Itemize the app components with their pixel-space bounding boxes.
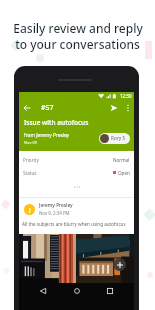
staticText: 12:30 bbox=[120, 93, 132, 99]
button[interactable]: Rory S bbox=[99, 133, 130, 144]
staticText: Priority bbox=[23, 157, 39, 163]
button[interactable]: Send bbox=[106, 100, 121, 115]
staticText: Issue with autofocus bbox=[24, 118, 89, 127]
staticText: Open bbox=[118, 170, 130, 176]
staticText: Rory S bbox=[111, 135, 126, 142]
staticText: Normal bbox=[113, 157, 130, 163]
button[interactable]: Home bbox=[68, 283, 86, 299]
button[interactable]: Status bbox=[19, 169, 134, 176]
staticText: J bbox=[29, 206, 31, 214]
button[interactable]: Add attachment bbox=[113, 258, 126, 271]
button[interactable]: Back bbox=[34, 283, 52, 299]
button[interactable]: Recent apps bbox=[101, 283, 119, 299]
button[interactable]: More options bbox=[121, 101, 134, 114]
staticText: Jeremy Presley bbox=[39, 202, 73, 209]
button[interactable]: Back bbox=[19, 100, 34, 115]
staticText: to your conversations bbox=[15, 36, 140, 52]
button[interactable]: Priority bbox=[19, 156, 134, 163]
staticText: from Jeremy Presley bbox=[24, 132, 70, 139]
staticText: Nov 09 bbox=[24, 140, 38, 145]
staticText: Nov 9, 2:34 PM bbox=[39, 210, 70, 216]
staticText: #57 bbox=[41, 103, 54, 113]
staticText: Status bbox=[23, 170, 37, 176]
staticText: Easily review and reply bbox=[13, 20, 143, 36]
staticText: All the subjects are blurry when using a… bbox=[22, 221, 126, 227]
